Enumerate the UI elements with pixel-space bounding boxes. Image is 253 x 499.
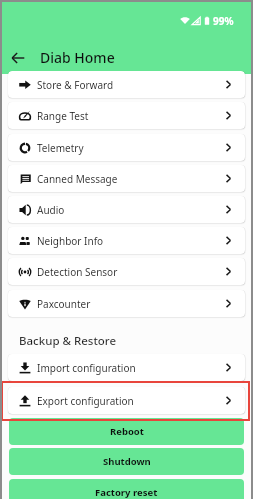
button[interactable]: Back	[4, 44, 31, 71]
button[interactable]: Factory reset	[9, 479, 244, 499]
button[interactable]: Store & Forward	[8, 71, 245, 98]
button[interactable]: Audio	[8, 196, 245, 223]
staticText: Diab Home	[40, 48, 115, 67]
staticText: Detection Sensor	[37, 265, 118, 279]
button[interactable]: Reboot	[9, 418, 244, 445]
button[interactable]: Paxcounter	[8, 290, 245, 317]
staticText: Store & Forward	[37, 78, 114, 92]
staticText: Audio	[37, 203, 65, 217]
button[interactable]: Telemetry	[8, 134, 245, 161]
staticText: Telemetry	[37, 141, 84, 155]
staticText: 99%	[213, 14, 234, 28]
staticText: Shutdown	[103, 455, 151, 468]
button[interactable]: Detection Sensor	[8, 258, 245, 285]
button[interactable]: Neighbor Info	[8, 227, 245, 254]
staticText: Reboot	[110, 425, 144, 438]
staticText: Range Test	[37, 109, 89, 123]
staticText: Factory reset	[95, 486, 158, 499]
button[interactable]: Shutdown	[9, 448, 244, 475]
staticText: Canned Message	[37, 172, 118, 186]
button[interactable]: Canned Message	[8, 165, 245, 192]
staticText: Paxcounter	[37, 297, 91, 311]
staticText: Export configuration	[37, 394, 134, 408]
staticText: Neighbor Info	[37, 234, 104, 248]
button[interactable]: Export configuration	[8, 387, 245, 414]
button[interactable]: Import configuration	[8, 354, 245, 381]
button[interactable]: Range Test	[8, 102, 245, 129]
staticText: Import configuration	[37, 361, 136, 375]
staticText: Backup & Restore	[19, 333, 117, 349]
